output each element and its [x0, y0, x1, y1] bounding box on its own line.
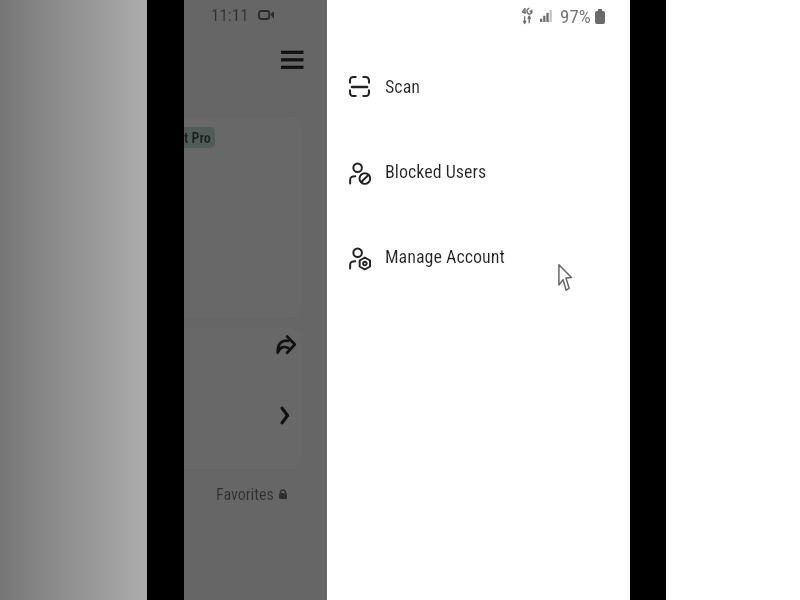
button[interactable]: Blocked Users: [327, 149, 630, 194]
staticText: Manage Account: [385, 246, 505, 267]
button[interactable]: Manage Account: [327, 234, 630, 279]
button[interactable]: Open navigation menu: [263, 40, 301, 78]
staticText: t Pro: [184, 130, 211, 146]
staticText: Scan: [385, 76, 420, 97]
button[interactable]: Open: [278, 407, 295, 424]
staticText: 11:11: [211, 5, 249, 25]
button[interactable]: Share: [277, 336, 295, 354]
staticText: 97%: [560, 5, 591, 27]
staticText: Favorites: [216, 485, 274, 504]
button[interactable]: Scan: [327, 64, 630, 109]
button[interactable]: Favorites: [216, 484, 287, 504]
staticText: Blocked Users: [385, 161, 487, 182]
